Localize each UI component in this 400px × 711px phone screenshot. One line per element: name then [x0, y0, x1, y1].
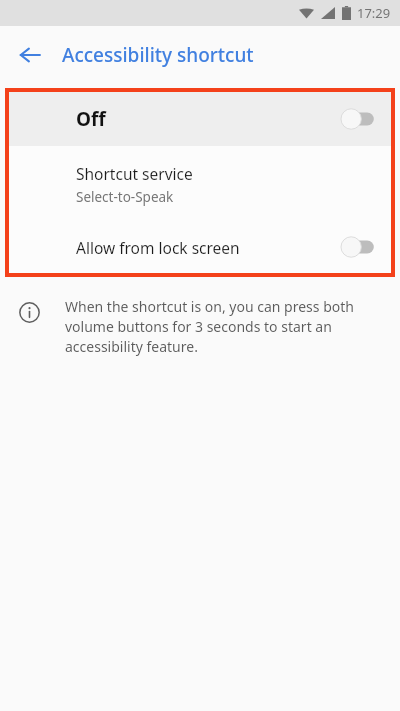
staticText: Accessibility shortcut: [62, 42, 254, 68]
staticText: Off: [76, 106, 106, 132]
button[interactable]: Toggle: [337, 234, 377, 260]
staticText: 17:29: [357, 4, 391, 22]
staticText: Select-to-Speak: [76, 188, 174, 206]
button[interactable]: Off: [9, 92, 391, 146]
staticText: When the shortcut is on, you can press b…: [65, 297, 376, 356]
button[interactable]: Shortcut service: [9, 146, 391, 221]
button[interactable]: Allow from lock screen: [9, 221, 391, 273]
staticText: Shortcut service: [76, 163, 193, 184]
staticText: Allow from lock screen: [76, 237, 240, 258]
button[interactable]: Toggle: [337, 106, 377, 132]
button[interactable]: Back: [10, 35, 50, 75]
